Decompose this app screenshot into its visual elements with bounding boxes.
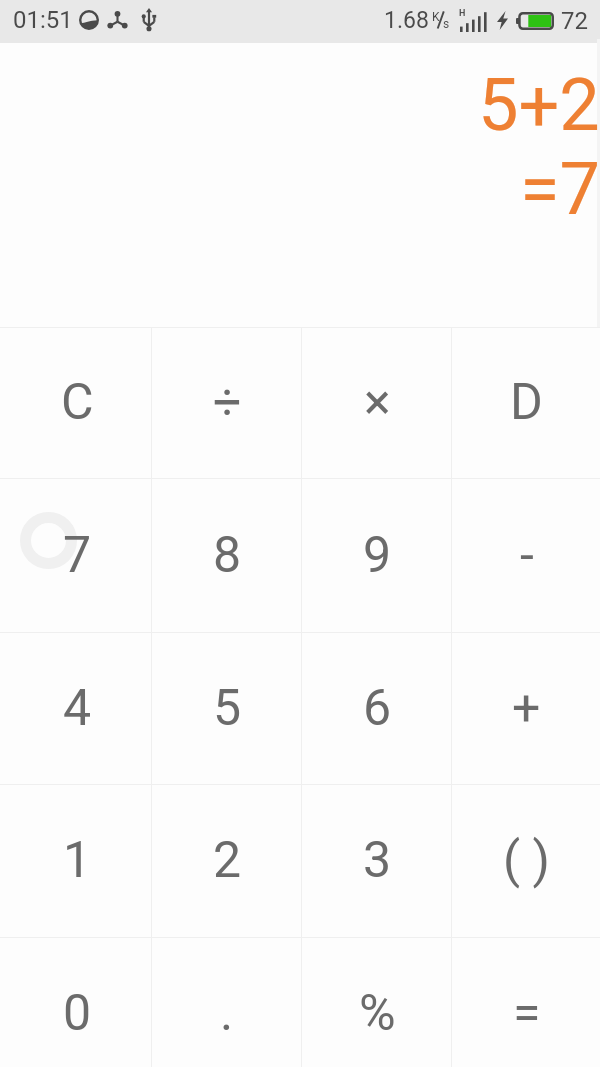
button[interactable]: 5 [151, 632, 301, 784]
button[interactable]: Plus [451, 632, 600, 784]
button[interactable]: Equals [451, 937, 600, 1067]
button[interactable]: 0 [0, 937, 151, 1067]
button[interactable]: 1 [0, 784, 151, 937]
staticText: 5 [213, 679, 242, 738]
button[interactable]: Divide [151, 327, 301, 478]
staticText: - [520, 526, 534, 585]
button[interactable]: 7 [0, 478, 151, 632]
staticText: 6 [363, 679, 392, 738]
button[interactable]: 4 [0, 632, 151, 784]
staticText: H [459, 8, 466, 19]
staticText: 5+2 [478, 63, 600, 147]
button[interactable]: Parentheses [451, 784, 600, 937]
button[interactable]: Delete [451, 327, 600, 478]
button[interactable]: 2 [151, 784, 301, 937]
staticText: × [364, 373, 391, 432]
staticText: 1 [63, 831, 92, 890]
button[interactable]: Percent [301, 937, 451, 1067]
staticText: =7 [520, 147, 600, 231]
staticText: 1.68 [384, 7, 429, 34]
staticText: 3 [363, 831, 392, 890]
staticText: = [513, 984, 541, 1043]
button[interactable]: Calculation display [0, 39, 600, 327]
staticText: 0 [63, 984, 92, 1043]
staticText: s [443, 17, 450, 31]
button[interactable]: Multiply [301, 327, 451, 478]
staticText: 7 [63, 526, 92, 585]
staticText: 8 [213, 526, 242, 585]
staticText: 4 [63, 679, 92, 738]
staticText: C [61, 373, 94, 432]
staticText: % [359, 984, 396, 1043]
staticText: + [512, 679, 541, 738]
button[interactable]: Minus [451, 478, 600, 632]
staticText: 9 [363, 526, 392, 585]
staticText: K [432, 10, 440, 24]
button[interactable]: 6 [301, 632, 451, 784]
staticText: . [220, 984, 234, 1043]
staticText: 01:51 [13, 6, 73, 34]
staticText: D [510, 373, 543, 432]
button[interactable]: 9 [301, 478, 451, 632]
button[interactable]: 3 [301, 784, 451, 937]
staticText: ( ) [503, 831, 550, 890]
button[interactable]: 8 [151, 478, 301, 632]
staticText: ÷ [213, 373, 242, 432]
staticText: 72 [561, 7, 588, 35]
button[interactable]: Decimal point [151, 937, 301, 1067]
staticText: 2 [213, 831, 242, 890]
button[interactable]: Clear [0, 327, 151, 478]
